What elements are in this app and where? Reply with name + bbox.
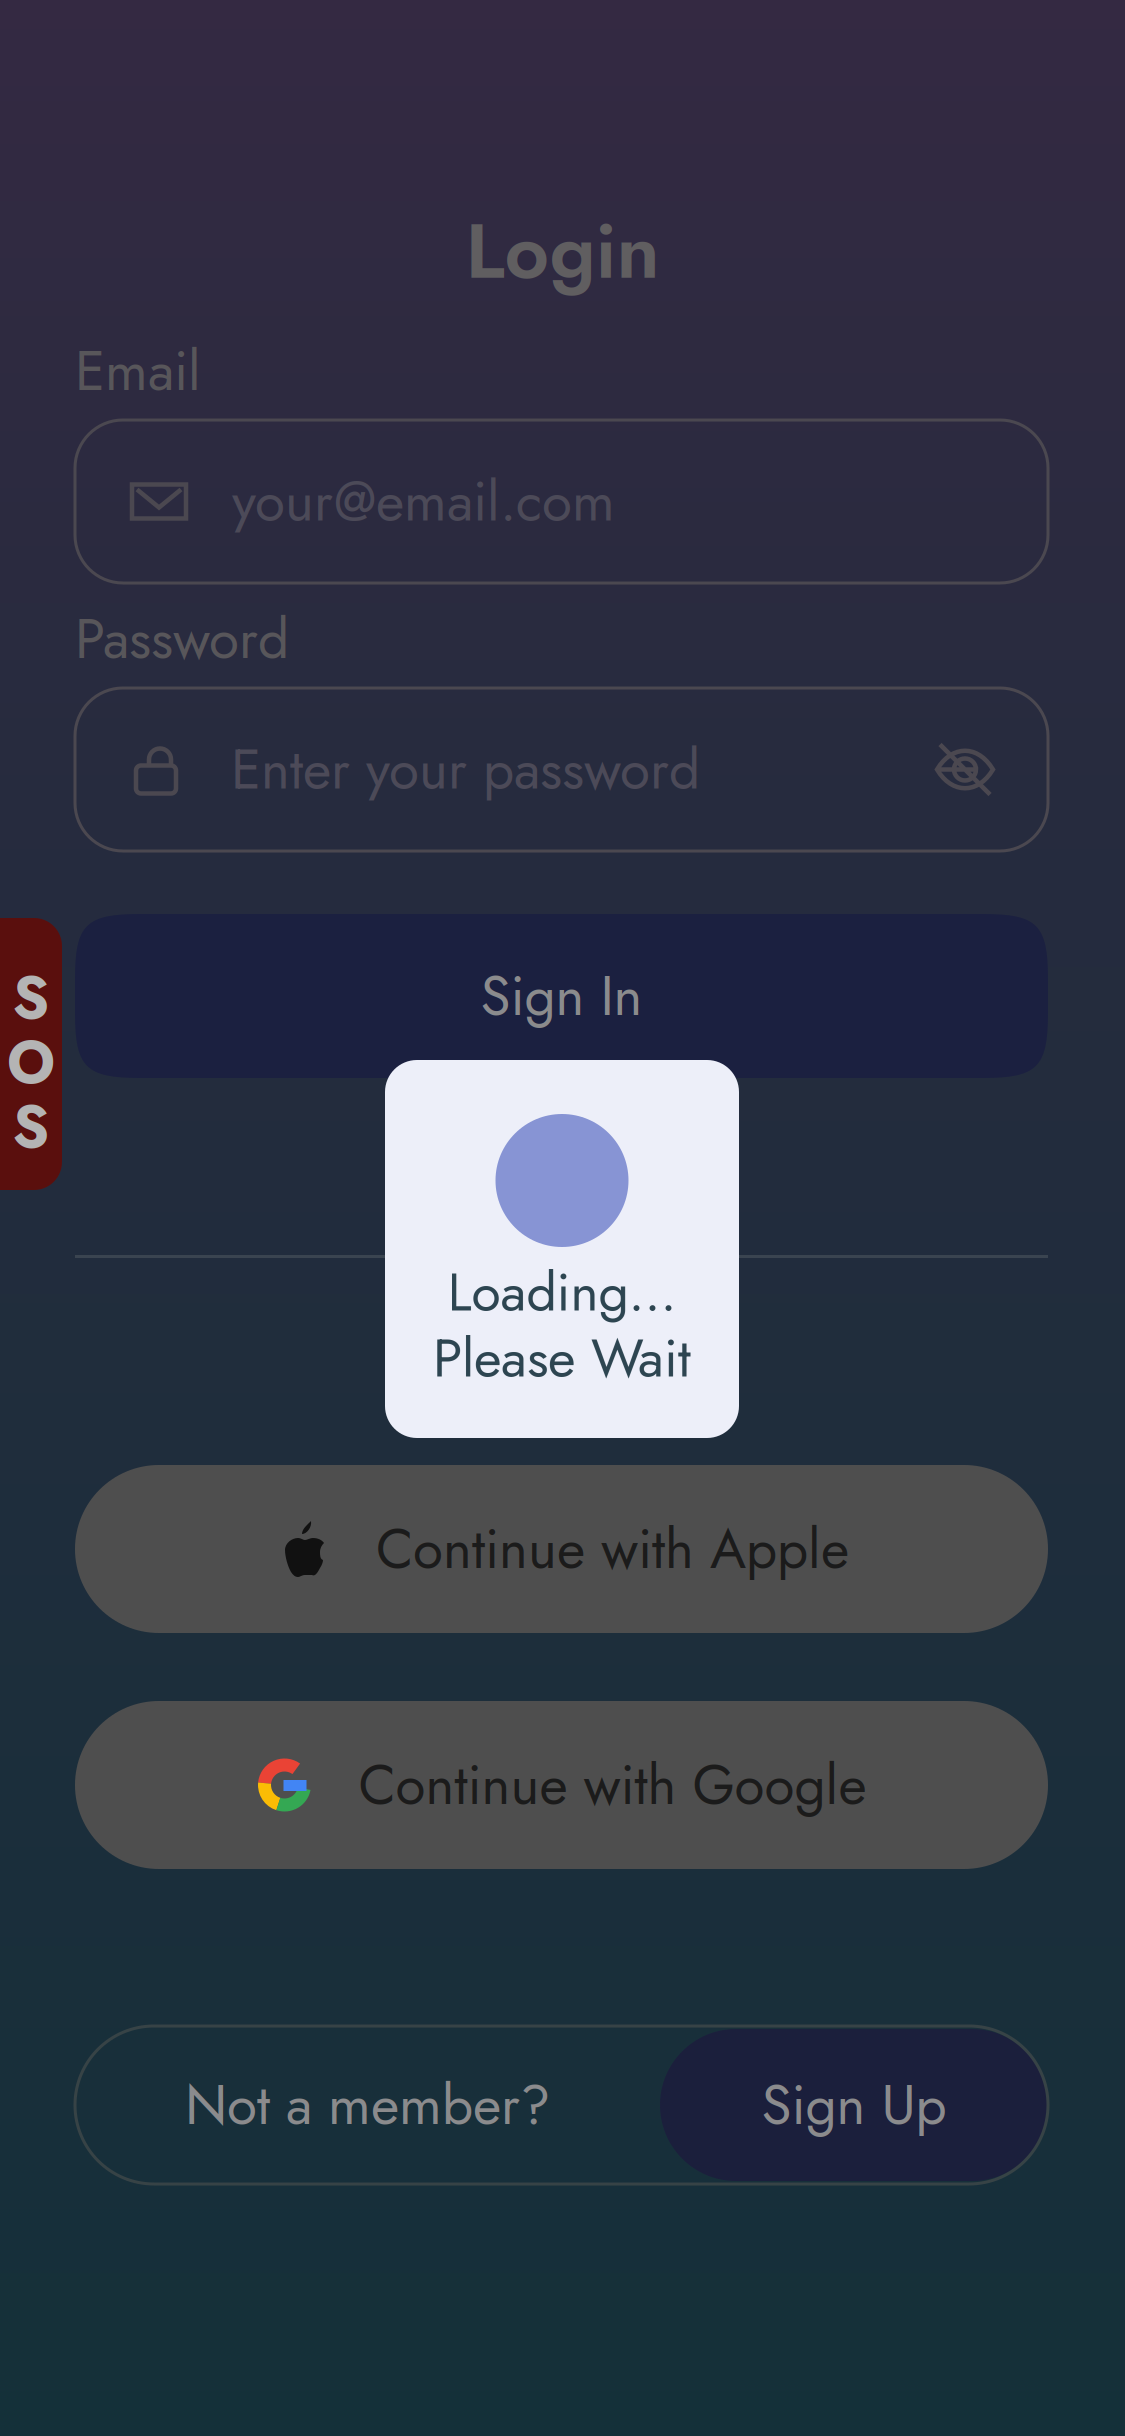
- staticText: S: [12, 956, 49, 1040]
- button[interactable]: Continue with Apple: [75, 1465, 1048, 1633]
- staticText: Sign In: [480, 956, 642, 1035]
- staticText: Password: [75, 599, 289, 678]
- staticText: Continue with Apple: [376, 1509, 849, 1588]
- staticText: S: [12, 1085, 49, 1169]
- staticText: Enter your password: [231, 730, 700, 809]
- staticText: Continue with Google: [358, 1745, 866, 1824]
- button[interactable]: Sign Up: [660, 2029, 1048, 2181]
- staticText: Email: [75, 331, 201, 410]
- staticText: O: [7, 1020, 55, 1105]
- button[interactable]: SOS emergency: [0, 918, 76, 1190]
- staticText: Loading...: [447, 1253, 676, 1331]
- button[interactable]: Continue with Google: [75, 1701, 1048, 1869]
- staticText: Login: [465, 195, 659, 307]
- staticText: Please Wait: [433, 1319, 691, 1397]
- staticText: Sign Up: [761, 2065, 946, 2144]
- staticText: Not a member?: [185, 2065, 550, 2144]
- staticText: your@email.com: [232, 462, 615, 541]
- button[interactable]: Sign In: [75, 914, 1048, 1078]
